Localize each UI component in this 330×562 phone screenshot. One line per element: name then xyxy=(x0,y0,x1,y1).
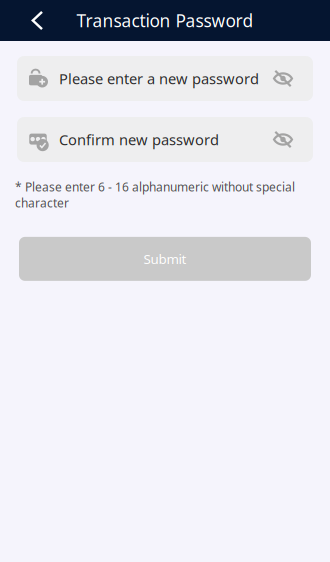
staticText: Please enter a new password xyxy=(59,69,259,88)
staticText: Submit xyxy=(143,250,186,268)
button[interactable]: Show password xyxy=(266,61,300,95)
staticText: * Please enter 6 - 16 alphanumeric witho… xyxy=(15,179,295,211)
button[interactable]: Submit xyxy=(0,237,330,281)
button[interactable]: Back xyxy=(0,0,58,41)
button[interactable]: Confirm new password xyxy=(17,117,266,162)
staticText: Confirm new password xyxy=(59,130,219,149)
button[interactable]: Please enter a new password xyxy=(17,56,266,101)
button[interactable]: Show password xyxy=(266,122,300,156)
staticText: Transaction Password xyxy=(76,9,253,32)
